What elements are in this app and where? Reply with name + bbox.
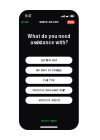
staticText: Locked Out (41, 59, 57, 62)
button[interactable]: Other Issue (38, 118, 60, 123)
staticText: Back (23, 21, 28, 24)
button[interactable]: Vehicle Stuck (25, 97, 72, 104)
staticText: SOS (68, 21, 74, 24)
button[interactable]: Vehicle Does Not Start (25, 87, 72, 94)
staticText: 9:41 (25, 14, 31, 18)
staticText: Vehicle Stuck (38, 99, 59, 102)
button[interactable]: SOS (67, 20, 75, 24)
button[interactable]: Back (21, 20, 28, 25)
staticText: No Fuel or Charge (36, 69, 62, 72)
staticText: assistance with? (30, 40, 67, 45)
staticText: Vehicle Does Not Start (32, 89, 65, 92)
staticText: Flat Tire (43, 79, 55, 82)
button[interactable]: No Fuel or Charge (25, 67, 72, 74)
button[interactable]: Flat Tire (25, 77, 72, 84)
staticText: Other Issue (41, 119, 57, 122)
staticText: Roadside Assistance (39, 21, 58, 23)
staticText: What do you need (27, 34, 70, 39)
button[interactable]: Locked Out (25, 57, 72, 64)
